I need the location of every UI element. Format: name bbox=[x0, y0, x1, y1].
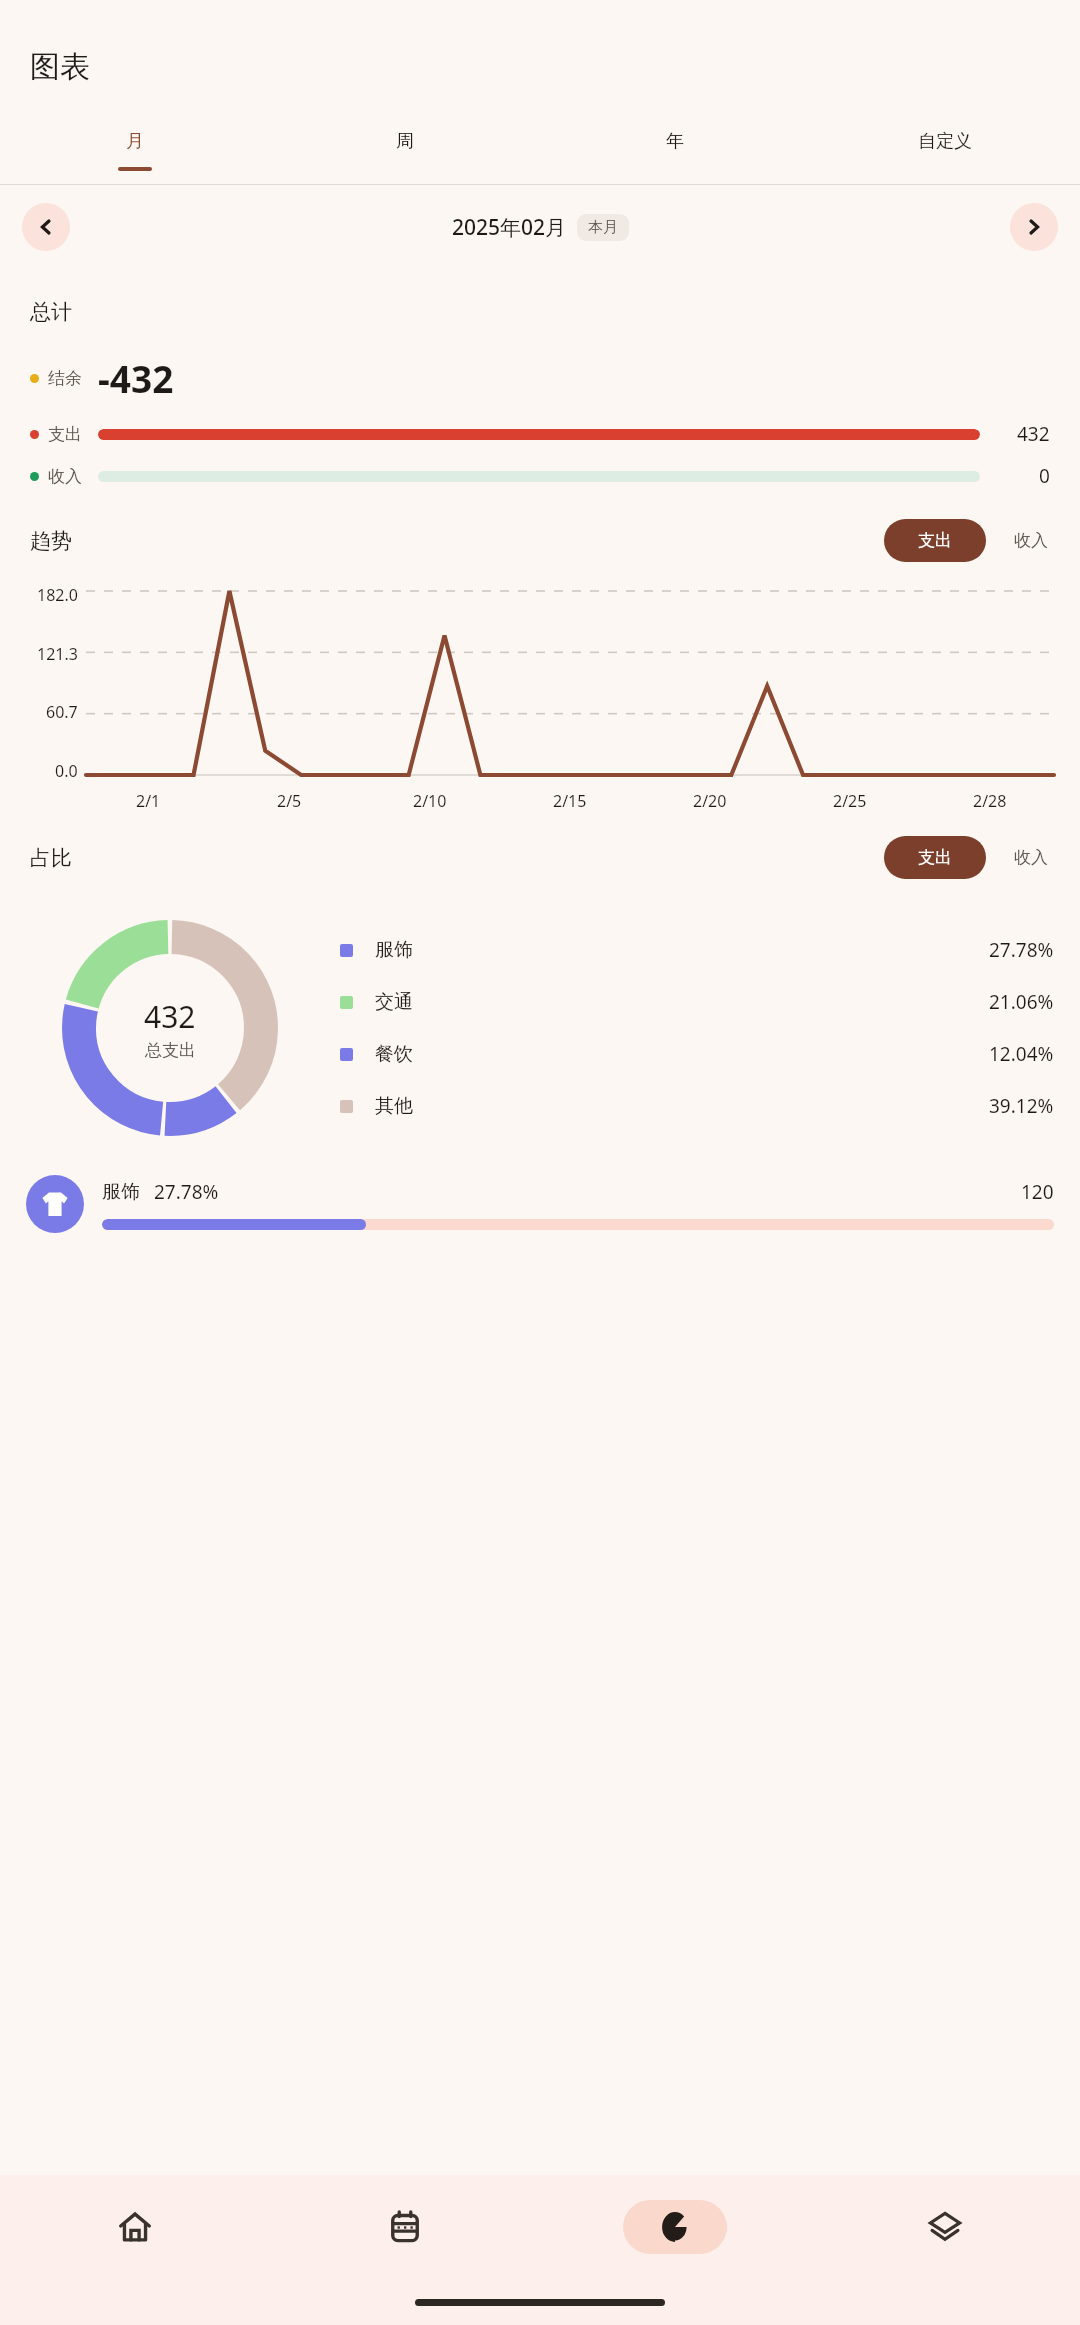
staticText: 自定义 bbox=[918, 130, 972, 153]
button[interactable]: Next month bbox=[1010, 203, 1058, 251]
button[interactable]: Calendar bbox=[270, 2175, 540, 2279]
staticText: 2/1 bbox=[136, 790, 161, 812]
staticText: 2/15 bbox=[553, 790, 587, 812]
staticText: 2025年02月 bbox=[452, 213, 567, 242]
staticText: 60.7 bbox=[46, 701, 78, 723]
button[interactable]: 服饰 bbox=[340, 937, 1054, 963]
staticText: 120 bbox=[1021, 1179, 1054, 1205]
staticText: 2/10 bbox=[413, 790, 447, 812]
staticText: 服饰 bbox=[375, 938, 413, 962]
staticText: 2/28 bbox=[973, 790, 1007, 812]
button[interactable]: 交通 bbox=[340, 989, 1054, 1015]
staticText: 2/20 bbox=[693, 790, 727, 812]
staticText: 2/5 bbox=[277, 790, 302, 812]
button[interactable]: 自定义 bbox=[810, 116, 1080, 185]
staticText: 182.0 bbox=[37, 584, 78, 606]
staticText: -432 bbox=[98, 353, 174, 403]
staticText: 12.04% bbox=[989, 1041, 1054, 1067]
button[interactable]: 支出 bbox=[884, 519, 986, 562]
staticText: 21.06% bbox=[989, 989, 1054, 1015]
staticText: 支出 bbox=[48, 424, 82, 445]
staticText: 支出 bbox=[918, 847, 952, 868]
button[interactable]: 周 bbox=[270, 116, 540, 185]
staticText: 本月 bbox=[588, 218, 618, 237]
button[interactable]: 本月 bbox=[577, 214, 629, 241]
staticText: 432 bbox=[1017, 421, 1050, 447]
button[interactable]: 支出 bbox=[884, 836, 986, 879]
staticText: 结余 bbox=[48, 368, 82, 389]
staticText: 趋势 bbox=[30, 528, 72, 554]
staticText: 0 bbox=[1039, 463, 1050, 489]
button[interactable]: 其他 bbox=[340, 1093, 1054, 1119]
button[interactable]: Charts bbox=[540, 2175, 810, 2279]
staticText: 餐饮 bbox=[375, 1042, 413, 1066]
staticText: 0.0 bbox=[55, 760, 78, 782]
button[interactable]: 餐饮 bbox=[340, 1041, 1054, 1067]
staticText: 27.78% bbox=[989, 937, 1054, 963]
staticText: 收入 bbox=[48, 466, 82, 487]
staticText: 占比 bbox=[30, 845, 72, 871]
staticText: 图表 bbox=[30, 48, 90, 86]
staticText: 年 bbox=[666, 130, 684, 153]
staticText: 月 bbox=[126, 130, 144, 153]
button[interactable]: Previous month bbox=[22, 203, 70, 251]
staticText: 收入 bbox=[1014, 530, 1048, 551]
staticText: 总计 bbox=[30, 299, 72, 325]
button[interactable]: 月 bbox=[0, 116, 270, 185]
button[interactable]: Home bbox=[0, 2175, 270, 2279]
staticText: 27.78% bbox=[154, 1179, 219, 1205]
staticText: 39.12% bbox=[989, 1093, 1054, 1119]
staticText: 服饰 bbox=[102, 1180, 140, 1204]
staticText: 总支出 bbox=[145, 1040, 196, 1061]
button[interactable]: 收入 bbox=[1008, 519, 1054, 562]
button[interactable]: 收入 bbox=[1008, 836, 1054, 879]
staticText: 收入 bbox=[1014, 847, 1048, 868]
button[interactable]: 服饰 bbox=[0, 1175, 1080, 1233]
staticText: 周 bbox=[396, 130, 414, 153]
staticText: 其他 bbox=[375, 1094, 413, 1118]
staticText: 2/25 bbox=[833, 790, 867, 812]
staticText: 432 bbox=[144, 996, 196, 1037]
staticText: 121.3 bbox=[37, 643, 78, 665]
staticText: 支出 bbox=[918, 530, 952, 551]
button[interactable]: Categories bbox=[810, 2175, 1080, 2279]
staticText: 交通 bbox=[375, 990, 413, 1014]
button[interactable]: 年 bbox=[540, 116, 810, 185]
